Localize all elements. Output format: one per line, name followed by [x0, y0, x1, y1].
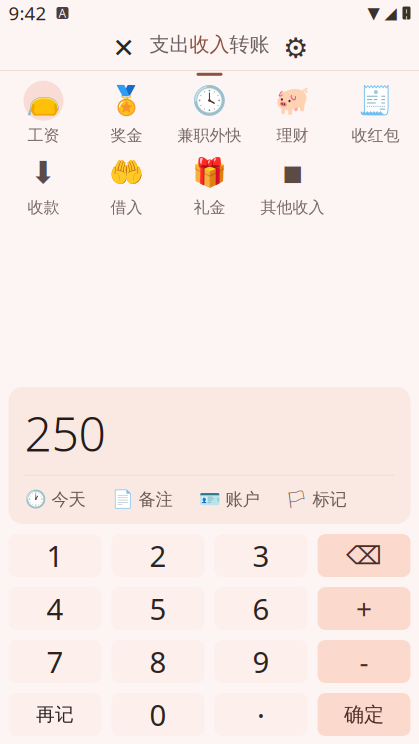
staticText: 8 [149, 642, 166, 681]
staticText: 转账 [229, 32, 269, 57]
staticText: 兼职外快 [177, 126, 241, 145]
button[interactable]: Settings [269, 26, 321, 70]
button[interactable]: 9 [214, 640, 307, 683]
button[interactable]: ⌫ [317, 534, 410, 577]
staticText: 今天 [51, 489, 85, 510]
staticText: 250 [24, 401, 105, 465]
button[interactable]: 2 [111, 534, 204, 577]
staticText: 确定 [344, 702, 384, 727]
button[interactable]: 🏳 [285, 485, 346, 514]
staticText: + [356, 590, 372, 627]
staticText: 0 [149, 695, 166, 734]
staticText: 奖金 [110, 126, 142, 145]
button[interactable]: 转账 [229, 26, 269, 70]
staticText: 7 [46, 642, 63, 681]
button[interactable]: 再记 [8, 693, 101, 736]
staticText: 工资 [27, 126, 59, 145]
staticText: 👝 [26, 85, 61, 117]
staticText: 9:42 [8, 1, 46, 25]
staticText: ▼ [367, 4, 379, 22]
button[interactable]: 📄 [111, 485, 172, 514]
staticText: - [359, 643, 368, 680]
button[interactable]: 🐖 [251, 77, 334, 149]
staticText: 🐖 [275, 85, 310, 117]
button[interactable]: + [317, 587, 410, 630]
button[interactable]: 🧾 [334, 77, 417, 149]
staticText: 收红包 [351, 126, 399, 145]
staticText: 🏳 [285, 489, 307, 509]
button[interactable]: 👝 [2, 77, 85, 149]
staticText: 理财 [276, 126, 308, 145]
button[interactable]: 8 [111, 640, 204, 683]
staticText: 收款 [27, 198, 59, 217]
staticText: 再记 [36, 703, 74, 726]
staticText: 5 [149, 589, 166, 628]
staticText: 🏅 [109, 85, 144, 117]
staticText: 支出 [149, 32, 189, 57]
button[interactable]: 🕓 [168, 77, 251, 149]
staticText: A [58, 5, 66, 21]
button[interactable]: 🕐 [24, 485, 85, 514]
button[interactable]: 🎁 [168, 149, 251, 221]
button[interactable]: 3 [214, 534, 307, 577]
button[interactable]: 🤲 [85, 149, 168, 221]
staticText: ◢ [384, 4, 396, 22]
button[interactable]: 确定 [317, 693, 410, 736]
staticText: 9 [252, 642, 269, 681]
staticText: 标记 [312, 489, 346, 510]
staticText: 借入 [110, 198, 142, 217]
button[interactable]: 6 [214, 587, 307, 630]
staticText: 🕐 [24, 489, 46, 509]
staticText: · [257, 695, 265, 734]
button[interactable]: Close [97, 26, 149, 70]
button[interactable]: ⬇ [2, 149, 85, 221]
button[interactable]: ◼ [251, 149, 334, 221]
button[interactable]: 🏅 [85, 77, 168, 149]
staticText: 🧾 [358, 85, 393, 117]
staticText: 🕓 [192, 85, 227, 117]
button[interactable]: - [317, 640, 410, 683]
button[interactable]: 支出 [149, 26, 189, 70]
staticText: ⬇ [30, 155, 56, 190]
button[interactable]: · [214, 693, 307, 736]
staticText: ✕ [112, 33, 134, 63]
staticText: 1 [46, 536, 63, 575]
staticText: 🎁 [192, 157, 227, 189]
staticText: 备注 [138, 489, 172, 510]
staticText: 📄 [111, 489, 133, 509]
staticText: ⚙ [283, 32, 308, 64]
button[interactable]: 7 [8, 640, 101, 683]
button[interactable]: 5 [111, 587, 204, 630]
button[interactable]: 收入 [189, 26, 229, 70]
staticText: 2 [149, 536, 166, 575]
staticText: ◼ [282, 158, 303, 187]
staticText: 其他收入 [260, 198, 324, 217]
staticText: 礼金 [193, 198, 225, 217]
staticText: 6 [252, 589, 269, 628]
button[interactable]: 1 [8, 534, 101, 577]
staticText: 3 [252, 536, 269, 575]
staticText: 🤲 [109, 157, 144, 189]
staticText: 4 [46, 589, 63, 628]
button[interactable]: 0 [111, 693, 204, 736]
staticText: ⌫ [346, 541, 382, 570]
staticText: ¦ [403, 6, 409, 20]
staticText: 收入 [189, 32, 229, 57]
button[interactable]: 🪪 [198, 485, 259, 514]
button[interactable]: 4 [8, 587, 101, 630]
staticText: 🪪 [198, 489, 220, 509]
staticText: 账户 [225, 489, 259, 510]
